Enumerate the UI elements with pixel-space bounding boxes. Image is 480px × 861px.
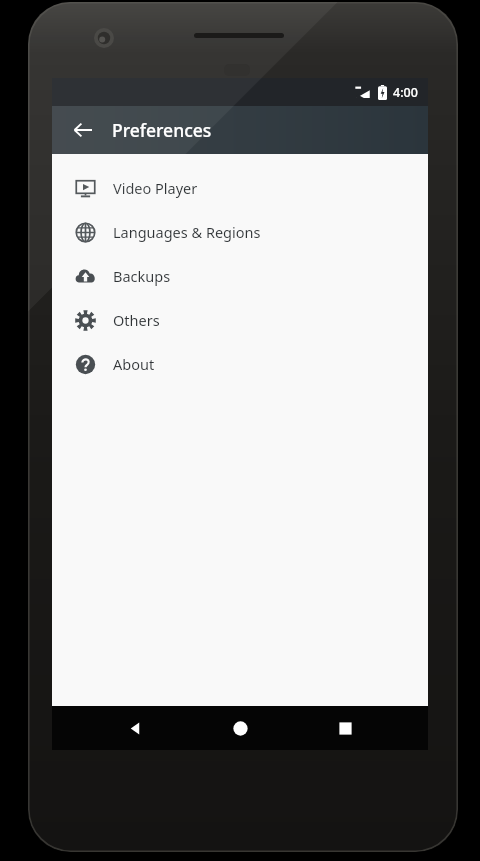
button[interactable]: Home [218,706,262,750]
staticText: Others [113,310,160,330]
staticText: 4:00 [393,84,418,101]
staticText: Video Player [113,178,198,198]
staticText: Backups [113,266,171,286]
staticText: Languages & Regions [113,222,261,242]
staticText: About [113,354,155,374]
button[interactable]: Languages & Regions [52,210,428,254]
button[interactable]: Back [64,111,102,149]
button[interactable]: Recent apps [323,706,367,750]
button[interactable]: Back [113,706,157,750]
button[interactable]: Backups [52,254,428,298]
button[interactable]: Video Player [52,166,428,210]
button[interactable]: Others [52,298,428,342]
button[interactable]: About [52,342,428,386]
staticText: Preferences [112,118,212,142]
